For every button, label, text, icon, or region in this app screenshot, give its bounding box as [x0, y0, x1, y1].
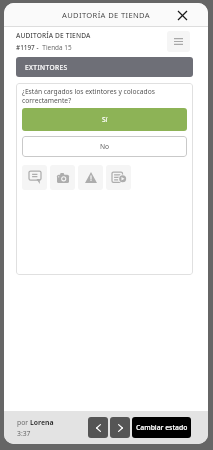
staticText: EXTINTORES	[25, 63, 68, 72]
staticText: 3:37	[17, 429, 31, 438]
button[interactable]: Cerrar	[174, 7, 190, 23]
staticText: Sí	[102, 115, 108, 124]
button[interactable]: Incidencia	[78, 165, 103, 190]
button[interactable]: No	[22, 136, 187, 157]
staticText: Cambiar estado	[136, 423, 188, 432]
button[interactable]: Comentario	[22, 165, 47, 190]
staticText: por	[17, 418, 30, 427]
staticText: No	[100, 142, 110, 151]
staticText: Lorena	[30, 418, 54, 427]
button[interactable]: EXTINTORES	[16, 57, 193, 77]
staticText: AUDITORÍA DE TIENDA	[62, 10, 151, 20]
button[interactable]: Cambiar estado	[132, 417, 191, 438]
button[interactable]: Menú	[167, 31, 190, 52]
button[interactable]: Cámara	[50, 165, 75, 190]
button[interactable]: Tarea	[106, 165, 131, 190]
button[interactable]: Anterior	[88, 417, 108, 438]
button[interactable]: Siguiente	[110, 417, 130, 438]
staticText: ¿Están cargados los extintores y colocad…	[22, 87, 187, 105]
staticText: AUDITORÍA DE TIENDA	[16, 31, 91, 40]
staticText: Tienda 15	[39, 43, 72, 52]
staticText: #1197 -	[16, 43, 39, 52]
button[interactable]: Sí	[22, 108, 187, 131]
